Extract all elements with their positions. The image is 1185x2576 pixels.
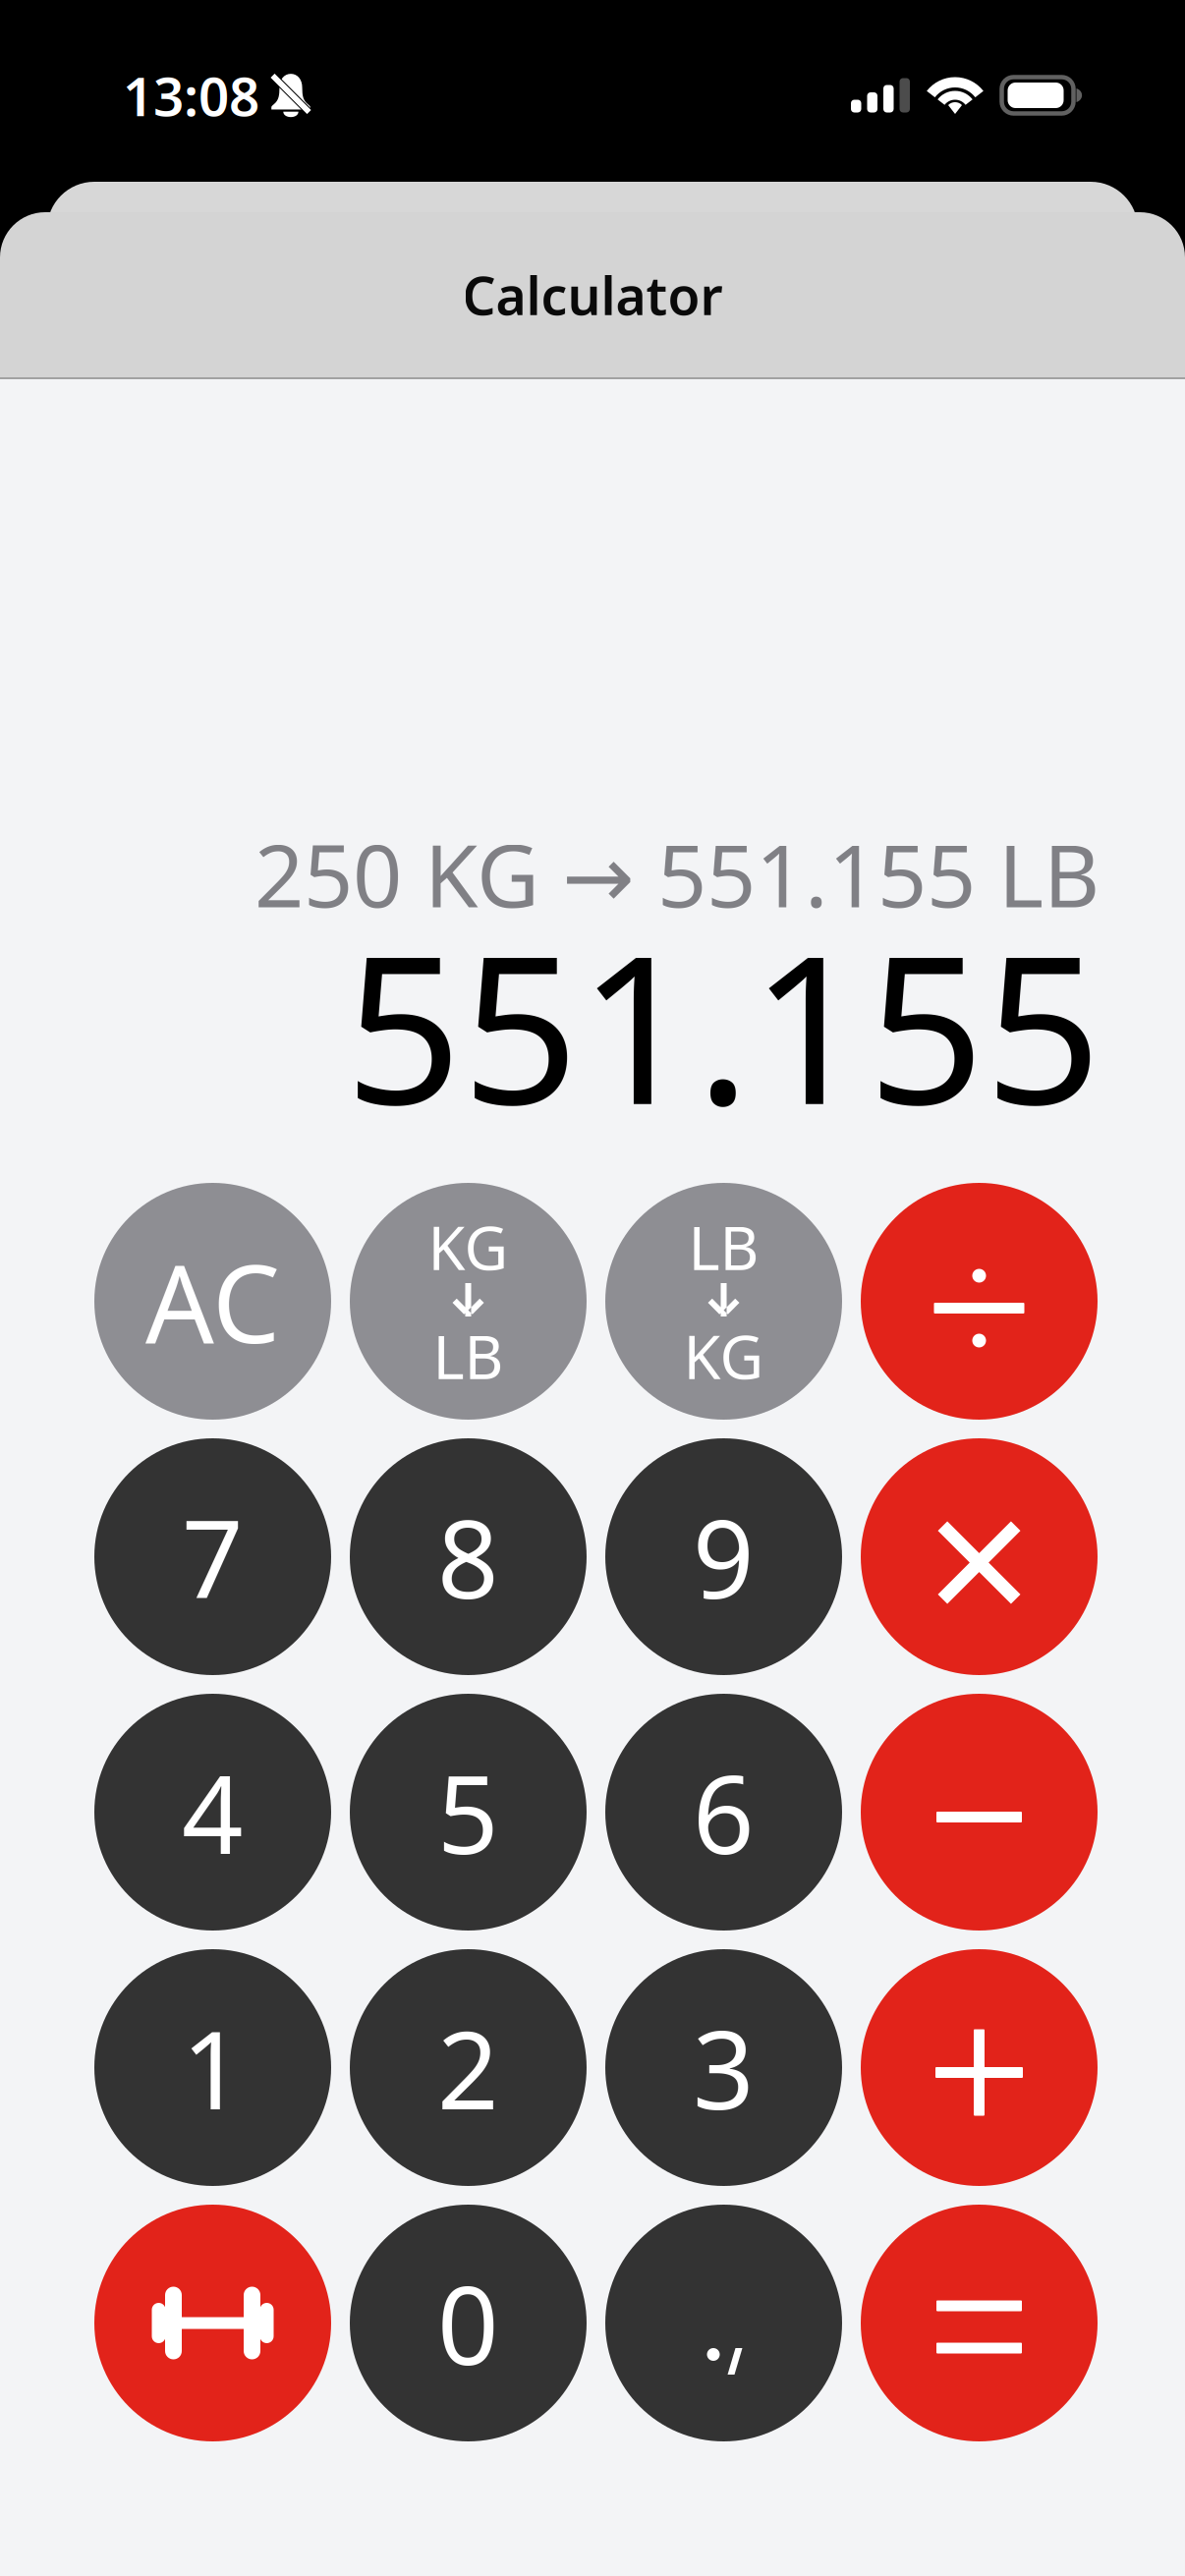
staticText: 1	[182, 1996, 244, 2139]
button[interactable]: Plus	[861, 1949, 1098, 2186]
staticText: 0	[437, 2252, 499, 2394]
staticText: LB	[688, 1207, 759, 1287]
staticText: 13:08	[123, 60, 259, 131]
button[interactable]: 9	[605, 1438, 842, 1675]
button[interactable]: Decimal separator	[605, 2205, 842, 2441]
button[interactable]: KG	[350, 1183, 587, 1420]
button[interactable]: 0	[350, 2205, 587, 2441]
button[interactable]: Weight units	[94, 2205, 331, 2441]
button[interactable]: 1	[94, 1949, 331, 2186]
staticText: 250 KG → 551.155 LB	[254, 816, 1100, 931]
button[interactable]: Minus	[861, 1694, 1098, 1931]
staticText: LB	[433, 1316, 504, 1396]
button[interactable]: LB	[605, 1183, 842, 1420]
button[interactable]: Divide	[861, 1183, 1098, 1420]
staticText: 7	[182, 1485, 244, 1628]
staticText: 5	[437, 1741, 499, 1883]
button[interactable]: 2	[350, 1949, 587, 2186]
staticText: 9	[693, 1485, 755, 1628]
button[interactable]: Multiply	[861, 1438, 1098, 1675]
staticText: AC	[145, 1230, 280, 1373]
staticText: 8	[437, 1485, 499, 1628]
button[interactable]: 3	[605, 1949, 842, 2186]
staticText: 3	[693, 1996, 755, 2139]
staticText: KG	[428, 1207, 508, 1287]
staticText: KG	[683, 1316, 764, 1396]
button[interactable]: 4	[94, 1694, 331, 1931]
staticText: 2	[437, 1996, 499, 2139]
button[interactable]: 6	[605, 1694, 842, 1931]
button[interactable]: 7	[94, 1438, 331, 1675]
button[interactable]: Equals	[861, 2205, 1098, 2441]
staticText: 6	[693, 1741, 755, 1883]
button[interactable]: 8	[350, 1438, 587, 1675]
button[interactable]: AC	[94, 1183, 331, 1420]
staticText: Calculator	[462, 260, 723, 330]
staticText: 4	[182, 1741, 244, 1883]
staticText: 551.155	[345, 889, 1101, 1160]
button[interactable]: 5	[350, 1694, 587, 1931]
